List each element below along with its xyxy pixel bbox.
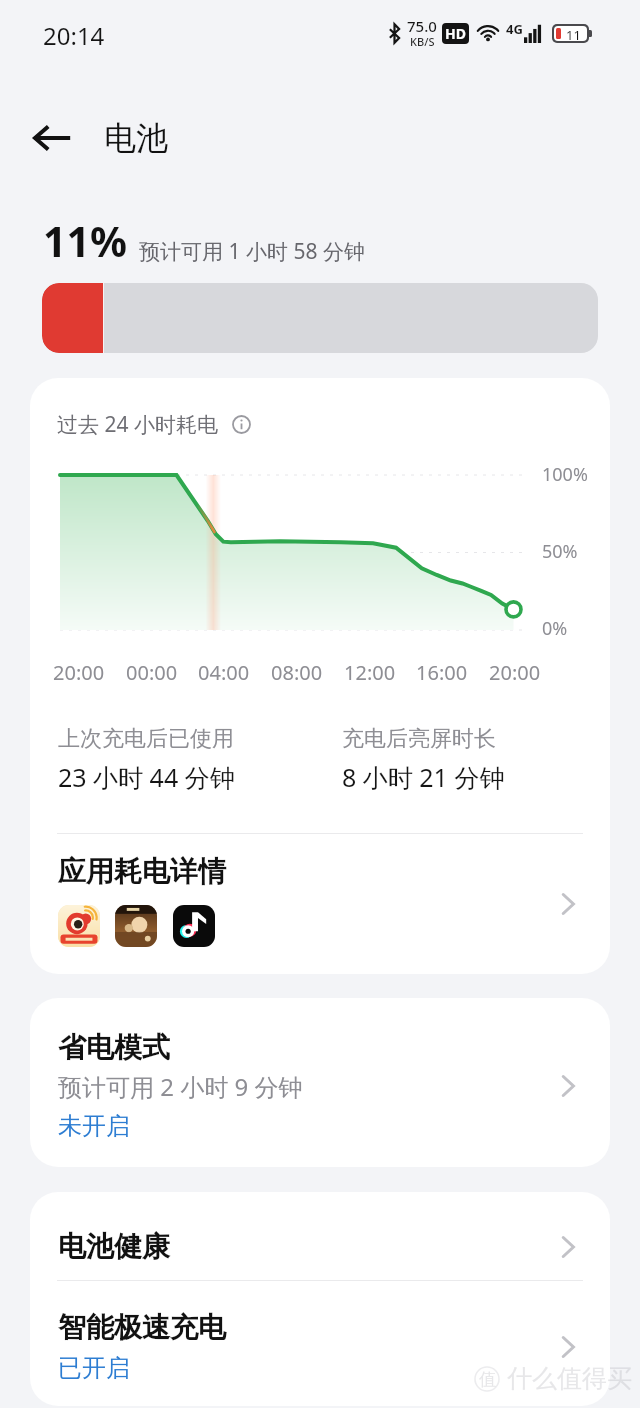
staticText: 已开启 [58, 1353, 130, 1383]
staticText: 12:00 [344, 659, 396, 686]
staticText: 过去 24 小时耗电 [57, 410, 218, 439]
staticText: 电池健康 [58, 1229, 551, 1264]
staticText: 04:00 [198, 659, 250, 686]
staticText: 20:00 [489, 659, 541, 686]
staticText: 75.0 [407, 16, 437, 36]
button[interactable]: Back [23, 108, 83, 168]
staticText: 智能极速充电 [58, 1310, 226, 1345]
staticText: 11% [43, 213, 127, 269]
staticText: HD [445, 24, 466, 43]
staticText: 50% [542, 539, 578, 564]
staticText: 应用耗电详情 [58, 854, 226, 889]
staticText: 4G [506, 20, 523, 38]
staticText: 上次充电后已使用 [58, 725, 234, 753]
staticText: 未开启 [58, 1111, 130, 1141]
staticText: 23 小时 44 分钟 [58, 760, 235, 794]
staticText: 省电模式 [58, 1030, 170, 1065]
staticText: 值 [479, 1369, 496, 1390]
staticText: 11 [566, 26, 581, 41]
button[interactable]: 应用耗电详情 [30, 834, 610, 974]
button[interactable]: 省电模式 [30, 998, 610, 1167]
staticText: 什么值得买 [507, 1363, 632, 1394]
button[interactable]: Battery usage info [232, 415, 251, 434]
staticText: 充电后亮屏时长 [342, 725, 496, 753]
staticText: 16:00 [416, 659, 468, 686]
staticText: 预计可用 1 小时 58 分钟 [139, 237, 365, 266]
staticText: 8 小时 21 分钟 [342, 760, 505, 794]
button[interactable]: 智能极速充电 [30, 1281, 610, 1406]
staticText: 电池 [104, 118, 168, 158]
staticText: 00:00 [126, 659, 178, 686]
staticText: 预计可用 2 小时 9 分钟 [58, 1070, 303, 1103]
staticText: KB/S [410, 34, 435, 49]
staticText: 20:14 [43, 19, 105, 52]
staticText: 08:00 [271, 659, 323, 686]
staticText: 0% [542, 616, 568, 641]
staticText: 100% [542, 462, 588, 487]
button[interactable]: 电池健康 [30, 1192, 610, 1280]
staticText: 20:00 [53, 659, 105, 686]
